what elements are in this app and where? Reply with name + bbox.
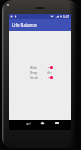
- staticText: Work: [30, 66, 38, 70]
- staticText: Life Balance: [12, 22, 37, 28]
- button[interactable]: Social: [30, 75, 53, 80]
- staticText: Sleep: [30, 71, 38, 75]
- staticText: 5:31: [63, 15, 70, 19]
- button[interactable]: Recents: [53, 120, 61, 128]
- button[interactable]: Work: [30, 65, 53, 70]
- button[interactable]: Home: [38, 120, 46, 128]
- button[interactable]: Back: [24, 120, 32, 128]
- staticText: Social: [30, 76, 38, 80]
- button[interactable]: Sleep: [30, 70, 53, 75]
